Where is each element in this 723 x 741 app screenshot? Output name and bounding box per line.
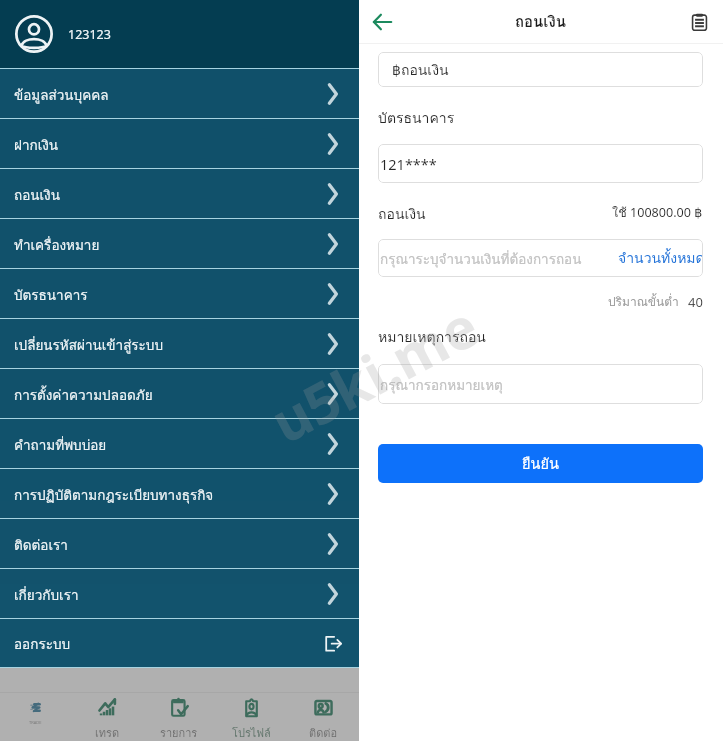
- button[interactable]: จำนวนทั้งหมด: [616, 243, 703, 273]
- button[interactable]: ติดต่อ: [287, 693, 359, 741]
- button[interactable]: ยืนยัน: [378, 444, 703, 483]
- staticText: ถอนเงิน: [378, 203, 426, 225]
- button[interactable]: เทรด: [71, 693, 143, 741]
- button[interactable]: เปลี่ยนรหัสผ่านเข้าสู่ระบบ: [0, 319, 359, 369]
- staticText: ติดต่อเรา: [14, 534, 68, 555]
- staticText: ทำเครื่องหมาย: [14, 234, 100, 255]
- button[interactable]: Records: [683, 6, 715, 38]
- staticText: บัตรธนาคาร: [14, 284, 88, 305]
- staticText: u5ki.me: [257, 287, 491, 459]
- button[interactable]: ทำเครื่องหมาย: [0, 219, 359, 269]
- staticText: เทรด: [95, 724, 120, 741]
- button[interactable]: Home: [0, 693, 71, 741]
- staticText: ใช้ 100800.00 ฿: [612, 203, 703, 223]
- staticText: โปรไฟล์: [232, 724, 271, 741]
- staticText: กรุณาระบุจำนวนเงินที่ต้องการถอน: [380, 248, 582, 269]
- staticText: จำนวนทั้งหมด: [618, 247, 703, 269]
- staticText: คำถามที่พบบ่อย: [14, 434, 107, 455]
- staticText: ข้อมูลส่วนบุคคล: [14, 84, 109, 105]
- staticText: TRADE: [29, 720, 42, 725]
- staticText: ฿ถอนเงิน: [392, 59, 449, 81]
- staticText: ฝากเงิน: [14, 134, 59, 155]
- button[interactable]: ฝากเงิน: [0, 119, 359, 169]
- staticText: บัตรธนาคาร: [378, 107, 455, 129]
- staticText: ถอนเงิน: [14, 184, 60, 205]
- staticText: การตั้งค่าความปลอดภัย: [14, 384, 153, 405]
- button[interactable]: เกี่ยวกับเรา: [0, 569, 359, 619]
- staticText: 40: [688, 293, 703, 311]
- button[interactable]: กรุณากรอกหมายเหตุ: [378, 364, 703, 404]
- staticText: ติดต่อ: [309, 724, 338, 741]
- staticText: ยืนยัน: [522, 452, 559, 475]
- staticText: การปฏิบัติตามกฎระเบียบทางธุรกิจ: [14, 484, 214, 505]
- button[interactable]: 121****: [378, 144, 703, 183]
- button[interactable]: ถอนเงิน: [0, 169, 359, 219]
- button[interactable]: โปรไฟล์: [215, 693, 287, 741]
- button[interactable]: รายการ: [143, 693, 215, 741]
- staticText: ถอนเงิน: [515, 10, 567, 34]
- button[interactable]: 123123: [0, 0, 359, 68]
- button[interactable]: บัตรธนาคาร: [0, 269, 359, 319]
- button[interactable]: ฿ถอนเงิน: [378, 52, 703, 87]
- staticText: รายการ: [160, 724, 198, 741]
- button[interactable]: Back: [366, 6, 398, 38]
- staticText: กรุณากรอกหมายเหตุ: [380, 374, 503, 395]
- button[interactable]: ออกระบบ: [0, 619, 359, 668]
- button[interactable]: การปฏิบัติตามกฎระเบียบทางธุรกิจ: [0, 469, 359, 519]
- button[interactable]: การตั้งค่าความปลอดภัย: [0, 369, 359, 419]
- button[interactable]: คำถามที่พบบ่อย: [0, 419, 359, 469]
- button[interactable]: ข้อมูลส่วนบุคคล: [0, 69, 359, 119]
- staticText: หมายเหตุการถอน: [378, 326, 486, 348]
- staticText: เปลี่ยนรหัสผ่านเข้าสู่ระบบ: [14, 334, 164, 355]
- staticText: ปริมาณขั้นต่ำ: [608, 292, 679, 311]
- button[interactable]: กรุณาระบุจำนวนเงินที่ต้องการถอน: [378, 239, 703, 277]
- staticText: เกี่ยวกับเรา: [14, 584, 79, 605]
- staticText: ออกระบบ: [14, 633, 71, 654]
- staticText: 123123: [68, 26, 111, 43]
- staticText: 121****: [380, 154, 437, 174]
- button[interactable]: ติดต่อเรา: [0, 519, 359, 569]
